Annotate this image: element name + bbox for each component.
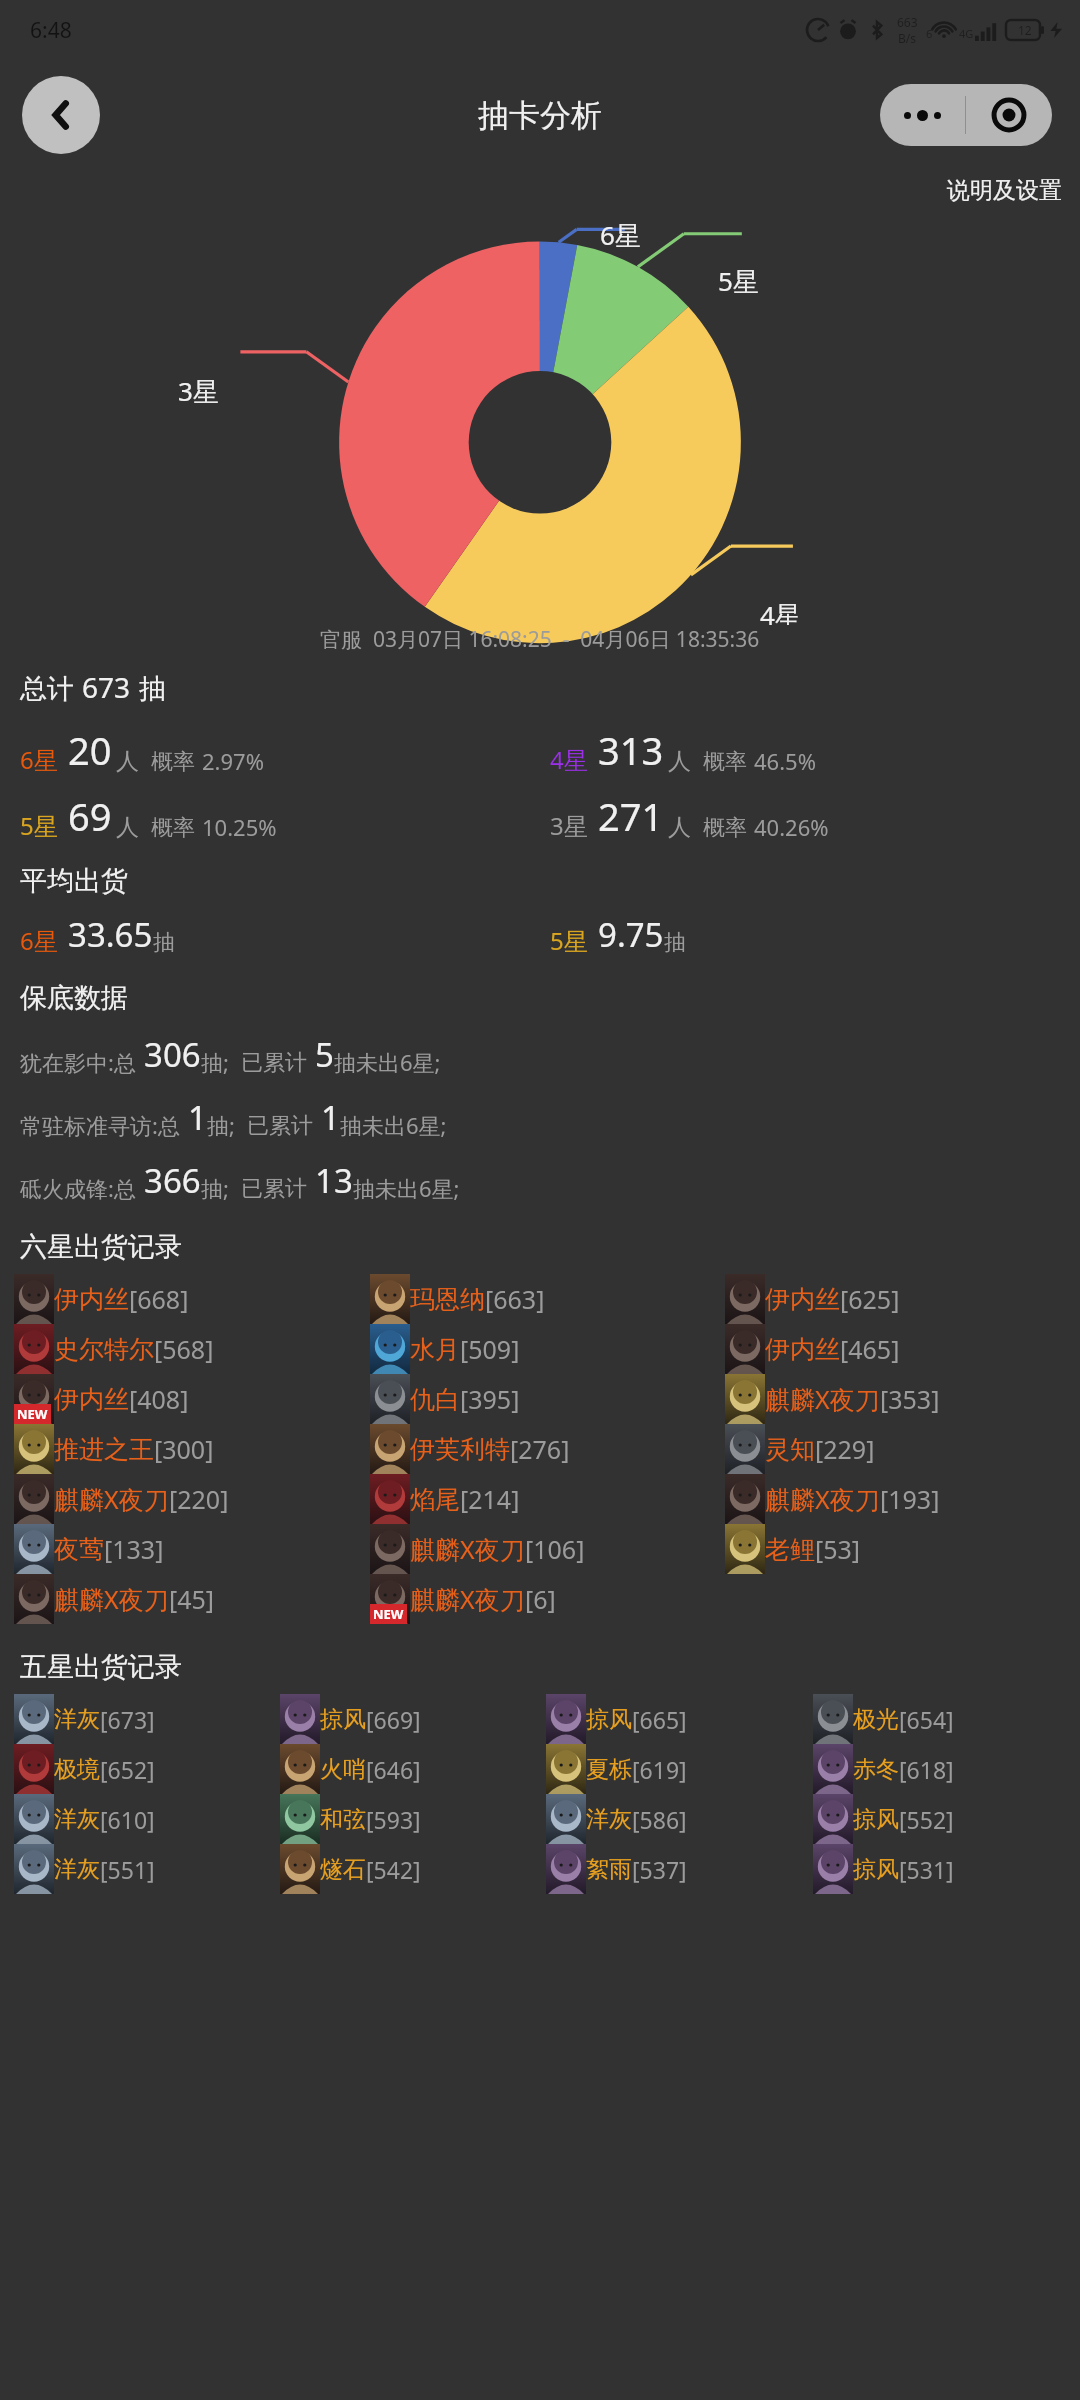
staticText: 洋灰 <box>586 1805 632 1834</box>
button[interactable]: 水月 <box>370 1324 520 1374</box>
button[interactable]: 5星 <box>550 912 686 957</box>
button[interactable]: 夏栎 <box>546 1744 687 1794</box>
button[interactable]: NEW <box>14 1374 189 1424</box>
button[interactable]: 燧石 <box>280 1844 421 1894</box>
staticText: 已累计 <box>247 1112 313 1140</box>
staticText: [45] <box>169 1582 215 1616</box>
staticText: 12 <box>1018 22 1032 38</box>
staticText: 5星 <box>718 263 759 299</box>
staticText: 673 <box>82 668 131 706</box>
staticText: 6 <box>926 26 933 41</box>
staticText: 掠风 <box>853 1855 899 1884</box>
staticText: 抽未出6星; <box>340 1110 447 1140</box>
staticText: 老鲤 <box>765 1534 815 1565</box>
staticText: 洋灰 <box>54 1705 100 1734</box>
staticText: 极境 <box>54 1755 100 1784</box>
staticText: [276] <box>510 1432 570 1466</box>
staticText: 人 <box>668 813 691 842</box>
button[interactable]: 赤冬 <box>813 1744 954 1794</box>
button[interactable]: 伊芙利特 <box>370 1424 570 1474</box>
staticText: 663 <box>897 14 918 30</box>
staticText: [300] <box>154 1432 214 1466</box>
button[interactable]: 火哨 <box>280 1744 421 1794</box>
button[interactable]: 伊内丝 <box>725 1324 900 1374</box>
button[interactable]: 说明及设置 <box>947 176 1062 205</box>
staticText: 犹在影中:总 <box>20 1047 136 1077</box>
staticText: [673] <box>100 1704 155 1735</box>
staticText: 抽卡分析 <box>478 96 602 135</box>
staticText: [542] <box>366 1854 421 1885</box>
staticText: 6星 <box>20 924 58 957</box>
button[interactable]: 掠风 <box>813 1794 954 1844</box>
staticText: NEW <box>17 1405 48 1423</box>
button[interactable]: 焰尾 <box>370 1474 520 1524</box>
staticText: 4G <box>959 26 974 41</box>
button[interactable]: 洋灰 <box>14 1694 155 1744</box>
button[interactable]: 麒麟X夜刀 <box>14 1474 229 1524</box>
staticText: 赤冬 <box>853 1755 899 1784</box>
staticText: 抽 <box>664 929 686 957</box>
button[interactable]: Back <box>22 76 100 154</box>
staticText: [6] <box>525 1582 556 1616</box>
staticText: 抽 <box>139 672 166 706</box>
button[interactable]: 玛恩纳 <box>370 1274 545 1324</box>
button[interactable]: 3星 <box>550 790 829 842</box>
staticText: 已累计 <box>241 1175 307 1203</box>
staticText: 人 <box>116 747 139 776</box>
button[interactable]: 砥火成锋:总 <box>20 1158 1080 1203</box>
button[interactable]: 洋灰 <box>546 1794 687 1844</box>
button[interactable]: 4星 <box>550 724 816 776</box>
staticText: [551] <box>100 1854 155 1885</box>
staticText: [353] <box>880 1382 940 1416</box>
staticText: 麒麟X夜刀 <box>410 1532 525 1566</box>
button[interactable]: More <box>880 84 965 146</box>
staticText: 4星 <box>760 597 801 625</box>
staticText: 洋灰 <box>54 1805 100 1834</box>
button[interactable]: 常驻标准寻访:总 <box>20 1095 1080 1140</box>
staticText: 焰尾 <box>410 1484 460 1515</box>
button[interactable]: NEW <box>370 1574 556 1624</box>
button[interactable]: 6星 <box>20 724 264 776</box>
button[interactable]: 仇白 <box>370 1374 520 1424</box>
button[interactable]: 灵知 <box>725 1424 875 1474</box>
staticText: 抽未出6星; <box>353 1173 460 1203</box>
staticText: 和弦 <box>320 1805 366 1834</box>
button[interactable]: 极境 <box>14 1744 155 1794</box>
button[interactable]: 掠风 <box>280 1694 421 1744</box>
button[interactable]: 麒麟X夜刀 <box>14 1574 215 1624</box>
staticText: [408] <box>129 1382 189 1416</box>
button[interactable]: 洋灰 <box>14 1844 155 1894</box>
button[interactable]: 麒麟X夜刀 <box>370 1524 585 1574</box>
button[interactable]: 麒麟X夜刀 <box>725 1374 940 1424</box>
button[interactable]: 老鲤 <box>725 1524 861 1574</box>
button[interactable]: 絮雨 <box>546 1844 687 1894</box>
staticText: 306 <box>144 1032 201 1077</box>
button[interactable]: 极光 <box>813 1694 954 1744</box>
button[interactable]: 5星 <box>20 790 277 842</box>
button[interactable]: 洋灰 <box>14 1794 155 1844</box>
staticText: 麒麟X夜刀 <box>54 1482 169 1516</box>
staticText: 概率 <box>151 748 195 776</box>
staticText: [552] <box>899 1804 954 1835</box>
staticText: [610] <box>100 1804 155 1835</box>
button[interactable]: 掠风 <box>546 1694 687 1744</box>
staticText: 20 <box>68 724 112 776</box>
staticText: 1 <box>321 1095 340 1140</box>
staticText: 概率 <box>151 814 195 842</box>
button[interactable]: 掠风 <box>813 1844 954 1894</box>
staticText: [106] <box>525 1532 585 1566</box>
button[interactable]: 史尔特尔 <box>14 1324 214 1374</box>
button[interactable]: 麒麟X夜刀 <box>725 1474 940 1524</box>
button[interactable]: 夜莺 <box>14 1524 164 1574</box>
staticText: 69 <box>68 790 112 842</box>
button[interactable]: 犹在影中:总 <box>20 1032 1080 1077</box>
staticText: 麒麟X夜刀 <box>410 1582 525 1616</box>
button[interactable]: 伊内丝 <box>14 1274 189 1324</box>
button[interactable]: 6星 <box>20 912 175 957</box>
button[interactable]: 伊内丝 <box>725 1274 900 1324</box>
button[interactable]: Close <box>966 84 1052 146</box>
button[interactable]: 和弦 <box>280 1794 421 1844</box>
button[interactable]: 推进之王 <box>14 1424 214 1474</box>
staticText: 麒麟X夜刀 <box>765 1482 880 1516</box>
staticText: [652] <box>100 1754 155 1785</box>
